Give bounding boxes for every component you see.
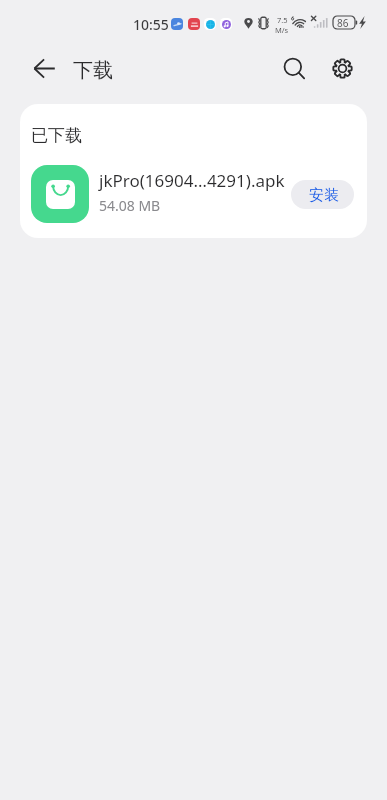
staticText: 安装 (309, 186, 339, 205)
button[interactable]: Back (24, 48, 64, 88)
button[interactable]: Settings (322, 48, 362, 88)
staticText: 7.5 (277, 15, 288, 25)
staticText: 10:55 (133, 15, 169, 34)
staticText: 已下载 (31, 125, 82, 146)
staticText: 86 (337, 16, 349, 29)
button[interactable]: 安装 (291, 180, 354, 209)
staticText: 54.08 MB (99, 196, 161, 215)
button[interactable]: jkPro(16904…4291).apk (20, 161, 367, 226)
staticText: M/s (275, 25, 289, 35)
staticText: 下载 (73, 58, 113, 83)
button[interactable]: Search (274, 48, 314, 88)
staticText: jkPro(16904…4291).apk (99, 169, 285, 192)
